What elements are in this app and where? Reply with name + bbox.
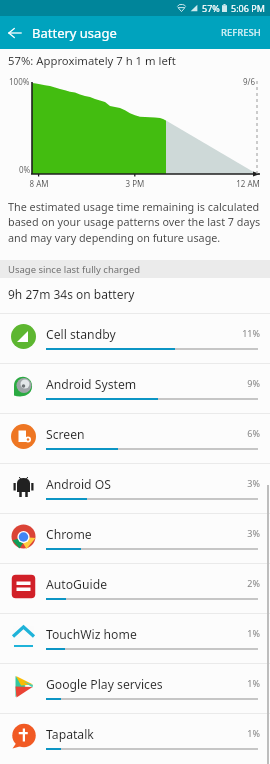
staticText: 9/6	[243, 76, 256, 87]
staticText: Screen	[46, 426, 85, 443]
staticText: 1%	[226, 727, 260, 739]
staticText: 11%	[226, 327, 260, 339]
staticText: 1%	[226, 677, 260, 689]
staticText: 2%	[226, 577, 260, 589]
staticText: 100%	[9, 76, 30, 87]
staticText: 57%	[202, 2, 220, 14]
button[interactable]: Android OS	[0, 463, 270, 513]
button[interactable]: AutoGuide	[0, 563, 270, 613]
button[interactable]: TouchWiz home	[0, 613, 270, 663]
staticText: 3 PM	[118, 178, 152, 189]
staticText: Usage since last fully charged	[8, 263, 140, 276]
staticText: AutoGuide	[46, 576, 108, 593]
button[interactable]: Android System	[0, 363, 270, 413]
button[interactable]: Google Play services	[0, 663, 270, 713]
staticText: Android OS	[46, 476, 111, 493]
staticText: 1%	[226, 627, 260, 639]
staticText: Battery usage	[32, 24, 117, 42]
staticText: Tapatalk	[46, 726, 94, 743]
staticText: 3%	[226, 527, 260, 539]
staticText: 5:06 PM	[231, 2, 265, 14]
staticText: 57%: Approximately 7 h 1 m left	[8, 53, 176, 68]
staticText: 9h 27m 34s on battery	[8, 286, 135, 302]
staticText: 3%	[226, 477, 260, 489]
button[interactable]: Cell standby	[0, 313, 270, 363]
staticText: 6%	[226, 427, 260, 439]
staticText: Google Play services	[46, 676, 163, 693]
button[interactable]: Navigate up	[0, 16, 30, 49]
staticText: The estimated usage time remaining is ca…	[8, 199, 266, 245]
staticText: 9%	[226, 377, 260, 389]
staticText: Android System	[46, 376, 137, 393]
staticText: Cell standby	[46, 326, 116, 343]
staticText: 8 AM	[22, 178, 56, 189]
staticText: 12 AM	[230, 178, 266, 189]
button[interactable]: Screen	[0, 413, 270, 463]
staticText: Chrome	[46, 526, 92, 543]
staticText: TouchWiz home	[46, 626, 137, 643]
button[interactable]: Tapatalk	[0, 713, 270, 763]
staticText: 0%	[19, 164, 31, 175]
button[interactable]: REFRESH	[212, 18, 270, 47]
staticText: REFRESH	[221, 26, 261, 39]
button[interactable]: Chrome	[0, 513, 270, 563]
